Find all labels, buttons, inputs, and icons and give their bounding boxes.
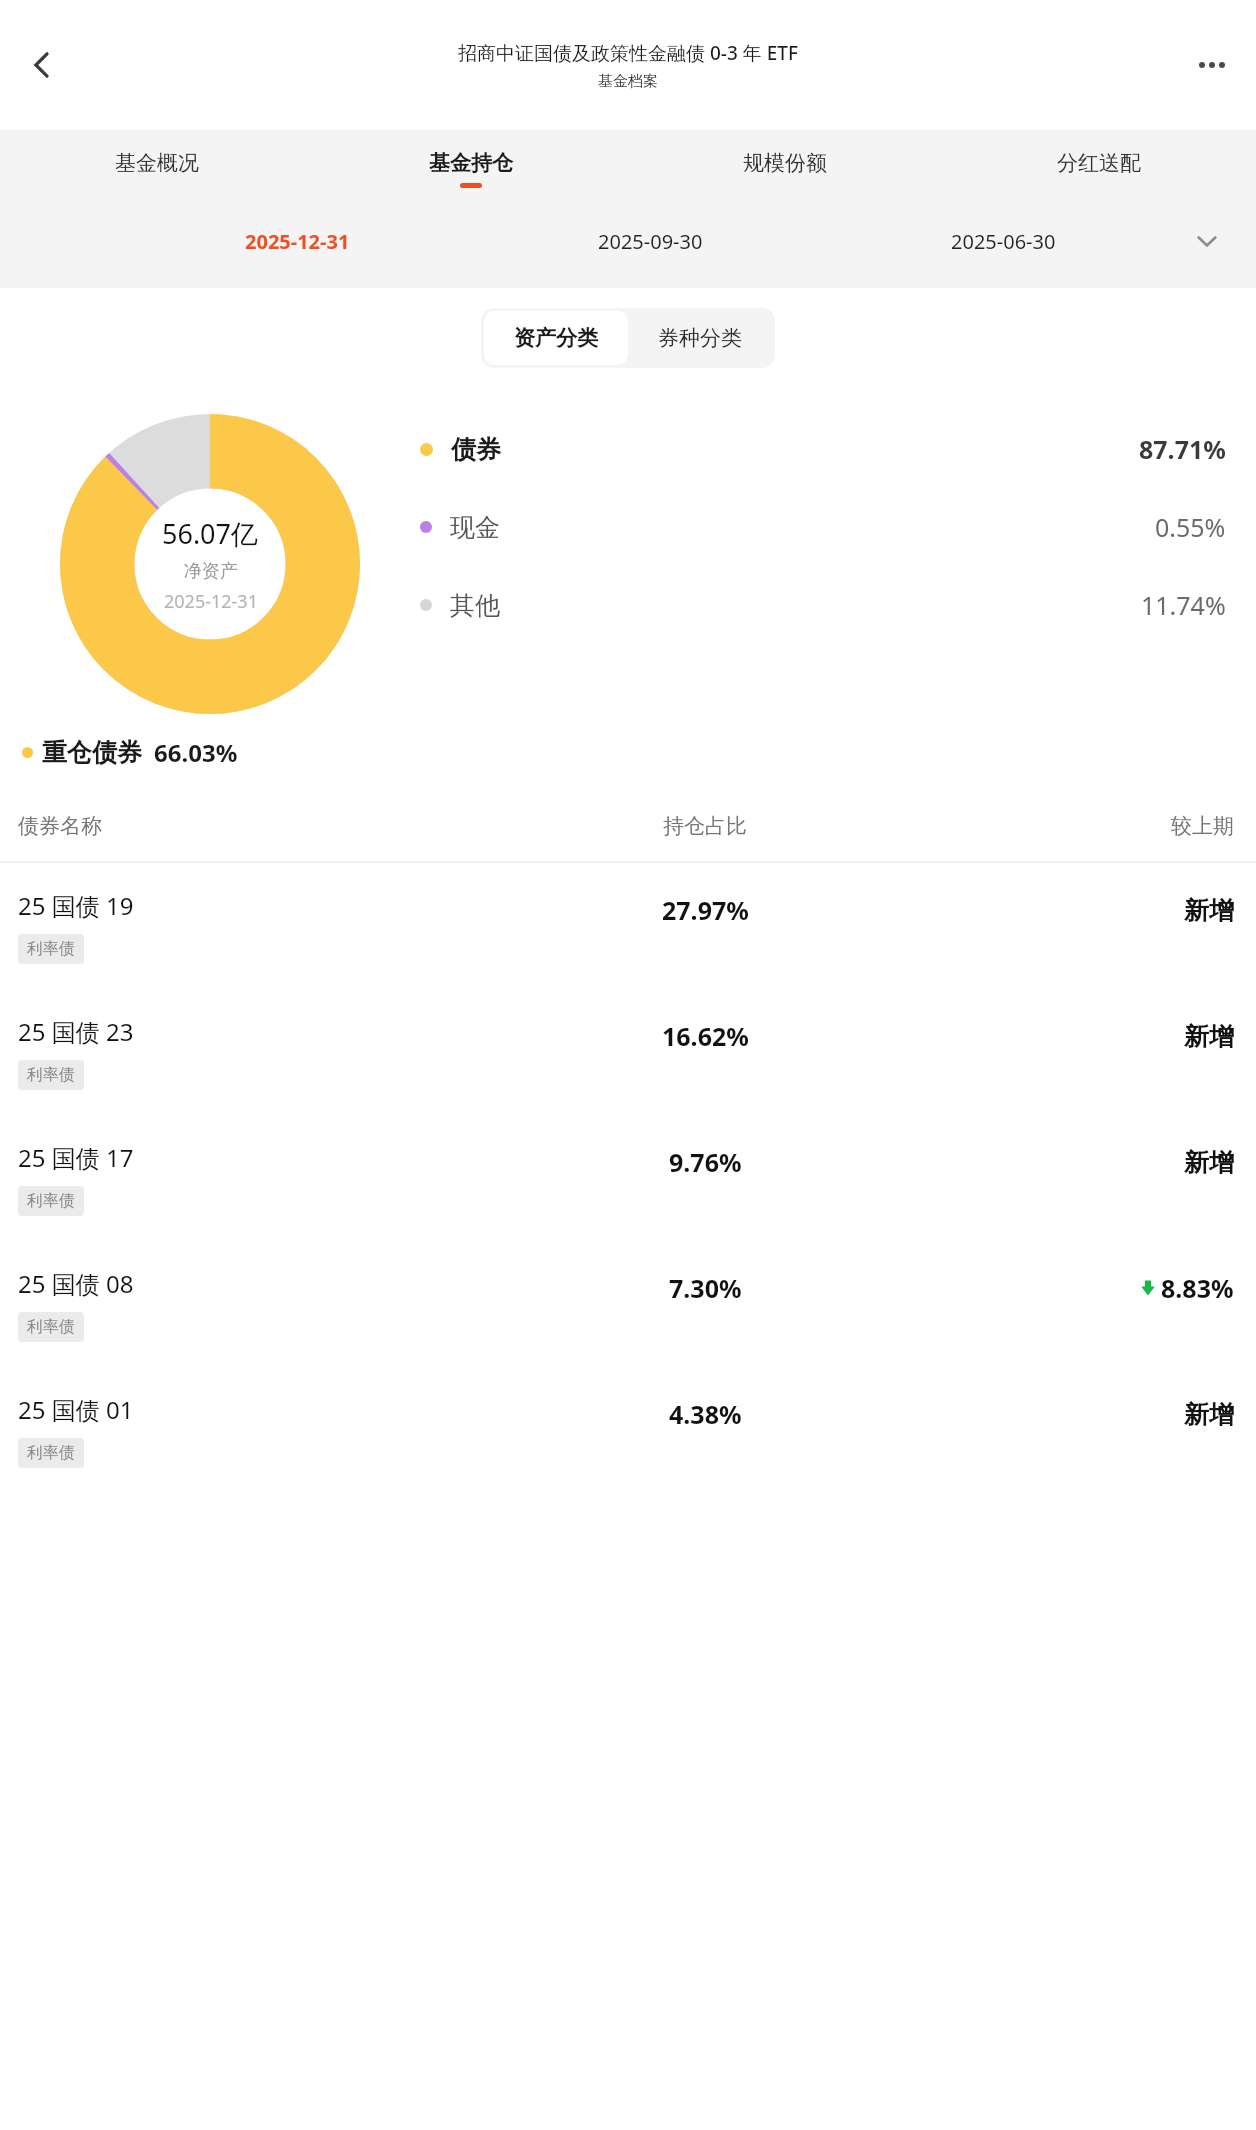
staticText: 券种分类 bbox=[658, 325, 742, 351]
staticText: 4.38% bbox=[669, 1397, 742, 1431]
staticText: 25 国债 17 bbox=[18, 1141, 134, 1174]
button[interactable]: 2025-12-31 bbox=[239, 222, 356, 261]
staticText: 0.55% bbox=[1155, 510, 1226, 544]
button[interactable]: 25 国债 23 bbox=[0, 989, 1256, 1115]
staticText: 基金概况 bbox=[115, 150, 199, 176]
button[interactable]: 基金概况 bbox=[0, 130, 314, 208]
button[interactable]: 分红送配 bbox=[942, 130, 1256, 208]
staticText: 16.62% bbox=[662, 1019, 749, 1053]
staticText: 利率债 bbox=[27, 1065, 75, 1085]
staticText: 利率债 bbox=[27, 1443, 75, 1463]
staticText: 2025-09-30 bbox=[598, 228, 703, 255]
button[interactable]: Back bbox=[14, 37, 70, 93]
staticText: 2025-12-31 bbox=[245, 228, 350, 255]
staticText: 2025-12-31 bbox=[164, 589, 258, 614]
staticText: 利率债 bbox=[27, 1191, 75, 1211]
staticText: 新增 bbox=[1184, 1021, 1234, 1052]
button[interactable]: 基金持仓 bbox=[314, 130, 628, 208]
staticText: 债券 bbox=[451, 434, 501, 465]
staticText: 利率债 bbox=[27, 1317, 75, 1337]
staticText: 资产分类 bbox=[514, 325, 598, 351]
button[interactable]: 2025-06-30 bbox=[945, 222, 1062, 261]
staticText: 7.30% bbox=[669, 1271, 742, 1305]
button[interactable]: 规模份额 bbox=[628, 130, 942, 208]
staticText: 25 国债 19 bbox=[18, 889, 134, 922]
staticText: 新增 bbox=[1184, 895, 1234, 926]
staticText: 较上期 bbox=[901, 813, 1234, 839]
staticText: 持仓占比 bbox=[509, 813, 901, 839]
staticText: 重仓债券 bbox=[42, 737, 142, 768]
staticText: 25 国债 01 bbox=[18, 1393, 134, 1426]
staticText: 利率债 bbox=[27, 939, 75, 959]
staticText: 债券名称 bbox=[18, 813, 509, 839]
staticText: 87.71% bbox=[1139, 432, 1226, 466]
button[interactable]: 25 国债 19 bbox=[0, 863, 1256, 989]
staticText: 其他 bbox=[450, 590, 500, 621]
staticText: 分红送配 bbox=[1057, 150, 1141, 176]
button[interactable]: 券种分类 bbox=[628, 311, 772, 365]
button[interactable]: 2025-09-30 bbox=[592, 222, 709, 261]
staticText: 基金持仓 bbox=[429, 150, 513, 176]
staticText: 净资产 bbox=[184, 560, 238, 583]
staticText: 9.76% bbox=[669, 1145, 742, 1179]
button[interactable]: More options bbox=[1184, 37, 1240, 93]
button[interactable]: 资产分类 bbox=[484, 311, 628, 365]
staticText: 56.07亿 bbox=[162, 515, 259, 552]
button[interactable]: 25 国债 01 bbox=[0, 1367, 1256, 1493]
staticText: 66.03% bbox=[154, 736, 238, 769]
staticText: 2025-06-30 bbox=[951, 228, 1056, 255]
staticText: 25 国债 23 bbox=[18, 1015, 134, 1048]
button[interactable]: 25 国债 08 bbox=[0, 1241, 1256, 1367]
staticText: 11.74% bbox=[1141, 588, 1226, 622]
staticText: 规模份额 bbox=[743, 150, 827, 176]
staticText: 新增 bbox=[1184, 1399, 1234, 1430]
staticText: 8.83% bbox=[1161, 1271, 1234, 1305]
staticText: 招商中证国债及政策性金融债 0-3 年 ETF bbox=[458, 40, 798, 66]
staticText: 25 国债 08 bbox=[18, 1267, 134, 1300]
button[interactable]: Expand dates bbox=[1180, 214, 1234, 268]
staticText: 27.97% bbox=[662, 893, 749, 927]
button[interactable]: 25 国债 17 bbox=[0, 1115, 1256, 1241]
staticText: 新增 bbox=[1184, 1147, 1234, 1178]
staticText: 现金 bbox=[450, 512, 500, 543]
staticText: 基金档案 bbox=[598, 72, 658, 91]
